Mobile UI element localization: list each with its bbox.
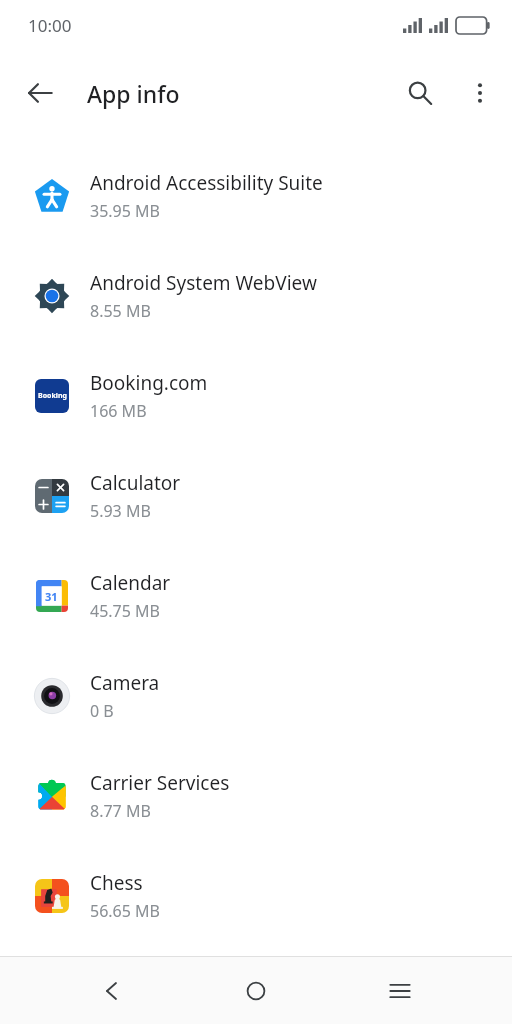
staticText: App info	[87, 78, 180, 109]
staticText: 56.65 MB	[90, 900, 160, 922]
staticText: 0 B	[90, 700, 114, 722]
button[interactable]: Booking	[0, 346, 512, 446]
staticText: Android System WebView	[90, 270, 317, 296]
staticText: 8.55 MB	[90, 300, 151, 322]
staticText: 35.95 MB	[90, 200, 160, 222]
button[interactable]: Search	[396, 69, 444, 117]
button[interactable]: Calculator	[0, 446, 512, 546]
staticText: 5.93 MB	[90, 500, 151, 522]
staticText: Chess	[90, 870, 143, 896]
button[interactable]: 31	[0, 546, 512, 646]
staticText: 10:00	[28, 14, 72, 37]
button[interactable]: Android System WebView	[0, 246, 512, 346]
button[interactable]: Back	[16, 69, 64, 117]
button[interactable]: Carrier Services	[0, 746, 512, 846]
staticText: 45.75 MB	[90, 600, 160, 622]
staticText: Booking	[38, 391, 67, 401]
staticText: 31	[45, 589, 58, 604]
staticText: Carrier Services	[90, 770, 230, 796]
button[interactable]: Android Accessibility Suite	[0, 146, 512, 246]
staticText: Android Accessibility Suite	[90, 170, 323, 196]
button[interactable]: Camera	[0, 646, 512, 746]
button[interactable]: More options	[456, 69, 504, 117]
staticText: 8.77 MB	[90, 800, 151, 822]
staticText: Calculator	[90, 470, 181, 496]
staticText: Camera	[90, 670, 160, 696]
staticText: 166 MB	[90, 400, 147, 422]
staticText: Booking.com	[90, 370, 208, 396]
staticText: Calendar	[90, 570, 171, 596]
button[interactable]: Chess	[0, 846, 512, 946]
button[interactable]: Recent apps	[368, 959, 432, 1023]
button[interactable]: Home	[224, 959, 288, 1023]
button[interactable]: Back	[80, 959, 144, 1023]
